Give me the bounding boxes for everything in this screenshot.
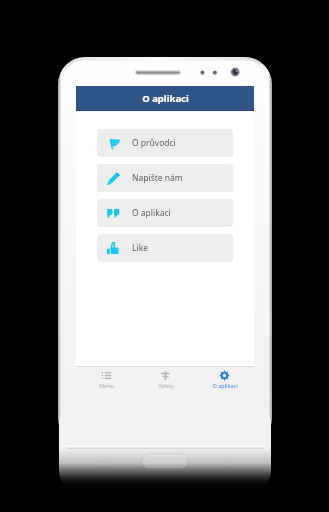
button[interactable]: O aplikaci xyxy=(195,367,254,392)
staticText: Like xyxy=(132,242,148,254)
staticText: O aplikaci xyxy=(212,382,238,389)
staticText: O průvodci xyxy=(132,137,176,149)
button[interactable]: Menu xyxy=(76,367,136,392)
button[interactable]: Like xyxy=(97,234,233,262)
staticText: O aplikaci xyxy=(142,92,189,105)
staticText: Výlety xyxy=(158,382,174,389)
staticText: Menu xyxy=(99,382,114,389)
button[interactable]: Napište nám xyxy=(97,164,233,192)
staticText: O aplikaci xyxy=(132,207,171,219)
button[interactable]: Výlety xyxy=(136,367,195,392)
button[interactable]: O průvodci xyxy=(97,129,233,157)
button[interactable]: O aplikaci xyxy=(97,199,233,227)
staticText: Napište nám xyxy=(132,172,183,184)
